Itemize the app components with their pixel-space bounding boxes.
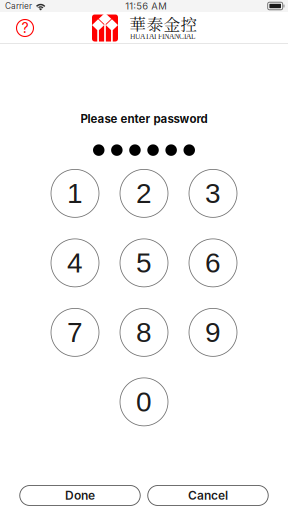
button[interactable]: 6 [189,239,237,287]
staticText: 4 [67,247,83,278]
staticText: 8 [136,317,152,348]
button[interactable]: 7 [51,308,99,356]
button[interactable]: Help [9,13,41,43]
staticText: 3 [205,178,221,209]
staticText: 5 [136,247,152,278]
button[interactable]: 9 [189,308,237,356]
button[interactable]: 3 [189,169,237,217]
staticText: Cancel [188,488,228,503]
staticText: ? [21,19,28,36]
staticText: Please enter password [80,112,207,126]
staticText: 2 [136,178,152,209]
staticText: 1 [67,178,83,209]
staticText: Done [65,488,95,503]
button[interactable]: 0 [120,378,168,426]
staticText: 7 [67,317,83,348]
staticText: Carrier [5,1,32,11]
button[interactable]: 1 [51,169,99,217]
staticText: HUATAI FINANCIAL [130,32,196,41]
staticText: 0 [136,386,152,417]
staticText: 華泰金控 [129,12,197,36]
button[interactable]: 8 [120,308,168,356]
button[interactable]: 5 [120,239,168,287]
button[interactable]: 4 [51,239,99,287]
staticText: 6 [205,247,221,278]
button[interactable]: 2 [120,169,168,217]
button[interactable]: Cancel [148,485,268,505]
staticText: 9 [205,317,221,348]
staticText: 11:56 AM [125,0,167,12]
button[interactable]: Done [20,485,140,505]
